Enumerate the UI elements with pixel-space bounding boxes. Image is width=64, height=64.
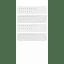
button[interactable]: List item 4 — [17, 33, 47, 41]
button[interactable]: List item 2 — [17, 15, 47, 23]
button[interactable]: List item 3 — [17, 24, 47, 32]
button[interactable] — [16, 0, 48, 7]
button[interactable]: List item 1 — [17, 7, 47, 14]
